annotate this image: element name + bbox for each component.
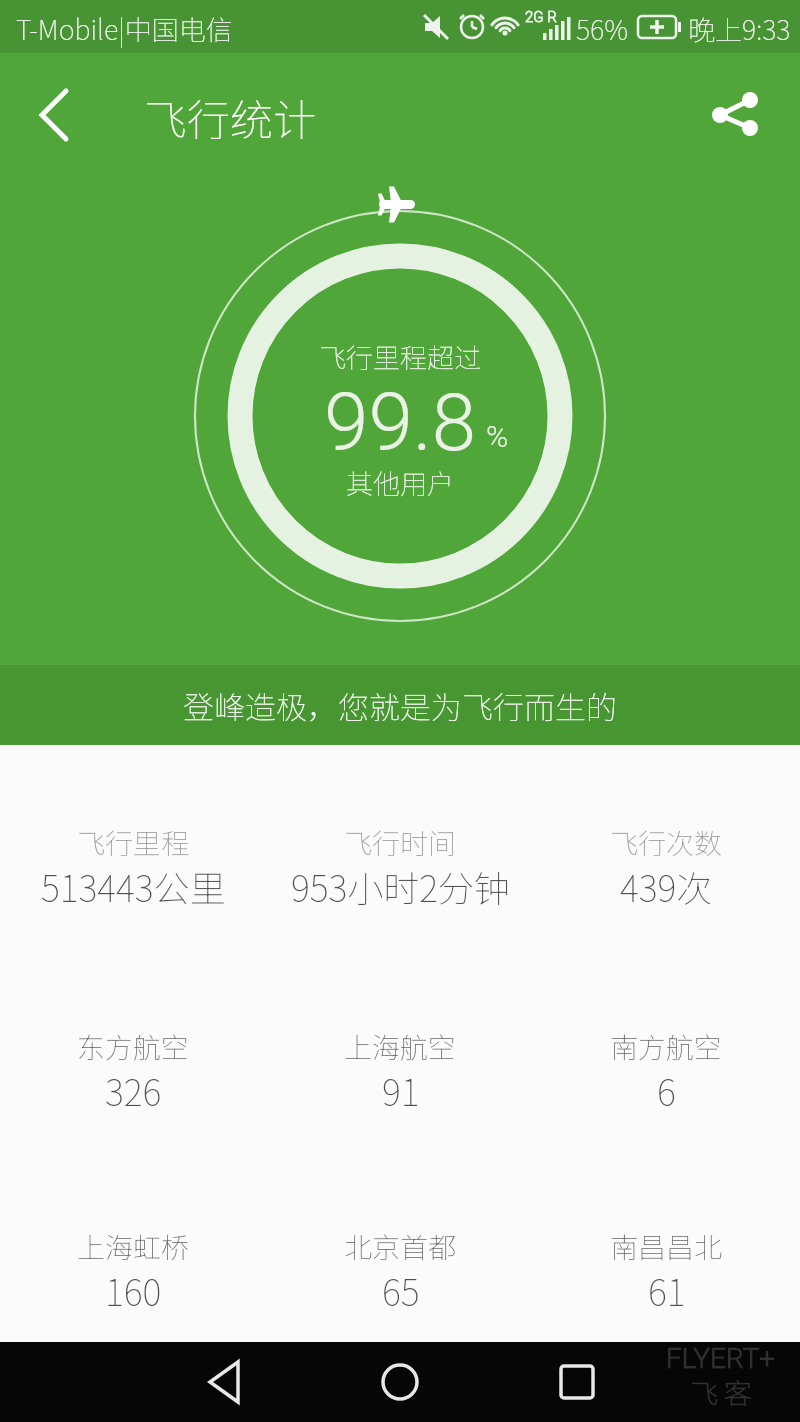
staticText: 439次	[620, 860, 713, 908]
staticText: 飞 客	[690, 1372, 753, 1406]
staticText: 326	[105, 1064, 162, 1112]
staticText: 56%	[576, 9, 628, 48]
staticText: FLYERT+	[666, 1342, 776, 1370]
staticText: 6	[657, 1064, 676, 1112]
staticText: 飞行统计	[144, 86, 316, 144]
staticText: 南昌昌北	[610, 1226, 723, 1267]
staticText: 61	[648, 1264, 686, 1312]
staticText: 登峰造极，您就是为飞行而生的	[183, 683, 617, 728]
staticText: 其他用户	[346, 463, 454, 502]
staticText: %	[486, 419, 509, 454]
staticText: 160	[105, 1264, 162, 1312]
staticText: T-Mobile|中国电信	[16, 9, 233, 48]
staticText: 上海航空	[344, 1026, 457, 1067]
staticText: 晚上9:33	[688, 9, 791, 48]
staticText: 上海虹桥	[77, 1226, 190, 1267]
staticText: 飞行里程	[77, 822, 190, 863]
staticText: 953小时2分钟	[291, 860, 511, 908]
staticText: 99.8	[324, 376, 477, 460]
staticText: 北京首都	[344, 1226, 457, 1267]
staticText: 东方航空	[77, 1026, 190, 1067]
staticText: 91	[382, 1064, 420, 1112]
staticText: 飞行次数	[610, 822, 723, 863]
staticText: 513443公里	[41, 860, 226, 908]
staticText: 2G R	[525, 8, 557, 26]
staticText: 飞行时间	[344, 822, 457, 863]
staticText: 飞行里程超过	[319, 337, 481, 376]
staticText: 南方航空	[610, 1026, 723, 1067]
staticText: 65	[382, 1264, 420, 1312]
